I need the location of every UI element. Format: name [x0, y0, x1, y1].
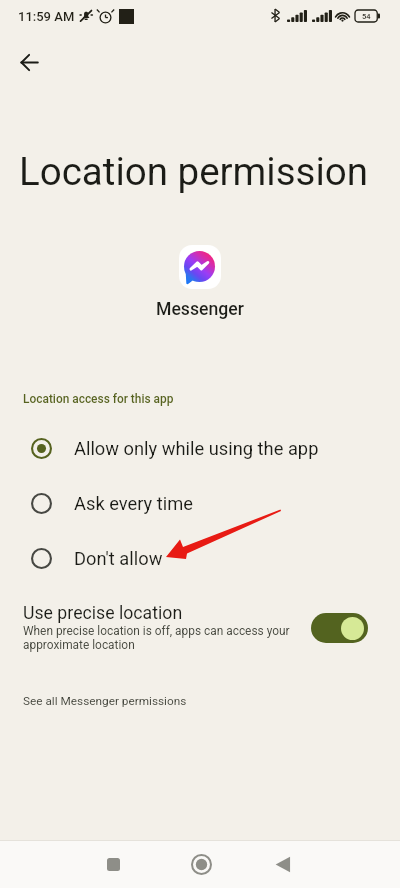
button[interactable]: Back — [10, 43, 49, 82]
staticText: Use precise location — [23, 603, 183, 624]
staticText: Messenger — [156, 299, 244, 320]
staticText: 54 — [362, 12, 371, 21]
button[interactable]: Don't allow — [0, 531, 400, 586]
button[interactable]: Ask every time — [0, 476, 400, 531]
staticText: Location access for this app — [23, 392, 174, 406]
button[interactable]: Home — [177, 841, 225, 888]
staticText: Location permission — [19, 149, 369, 194]
button[interactable]: Back — [259, 841, 307, 888]
staticText: 11:59 AM — [18, 9, 75, 24]
button[interactable]: See all Messenger permissions — [23, 692, 187, 710]
button[interactable]: Use precise location toggle — [311, 613, 368, 643]
staticText: Ask every time — [74, 493, 193, 514]
staticText: Allow only while using the app — [74, 438, 319, 459]
button[interactable]: Recent apps — [89, 841, 137, 888]
staticText: Don't allow — [74, 548, 163, 569]
button[interactable]: Use precise location — [0, 599, 400, 659]
staticText: When precise location is off, apps can a… — [23, 624, 290, 652]
button[interactable]: Allow only while using the app — [0, 421, 400, 476]
